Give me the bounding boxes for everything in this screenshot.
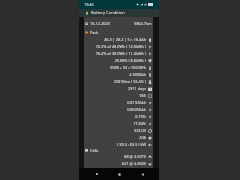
staticText: 0.80350Ah	[127, 107, 146, 112]
button[interactable]: Pack	[85, 29, 152, 36]
button[interactable]: 17.84%	[85, 120, 152, 127]
staticText: Pack	[90, 30, 99, 35]
button[interactable]: #8 @ 4.027V	[85, 153, 152, 160]
button[interactable]: 965	[85, 92, 152, 99]
button[interactable]: 16-12-2023	[85, 20, 152, 27]
staticText: 3588 + 53 = 9332Wh	[110, 65, 146, 70]
staticText: 0.81925Ah	[127, 100, 146, 105]
staticText: Cells	[90, 148, 99, 153]
staticText: 5864.7km	[134, 21, 152, 26]
button[interactable]: 4.9000Ah	[85, 71, 152, 78]
button[interactable]: 323.0V	[85, 127, 152, 134]
button[interactable]: 3588 + 53 = 9332Wh	[85, 64, 152, 71]
button[interactable]: 74.3% of 40.0Wh ( 12.0kWh )	[85, 43, 152, 50]
button[interactable]: 46.3 | 28.2 | 5 = 16.4Ah	[85, 36, 152, 43]
staticText: 78.4% of 38.0Wh ( 11.4kWh )	[95, 51, 146, 56]
staticText: 965	[139, 93, 146, 98]
staticText: 20A	[139, 135, 146, 140]
staticText: 323.0V	[134, 128, 146, 133]
staticText: 19:46	[84, 2, 94, 7]
staticText: 17.84%	[133, 121, 146, 126]
staticText: Battery Condition	[91, 10, 125, 16]
staticText: #21 @ 4.064V	[121, 161, 146, 166]
staticText: 25816km ( 53.4% )	[113, 79, 146, 84]
button[interactable]: Battery	[79, 9, 159, 17]
button[interactable]: ( 30.3 : 83.5 ) kW	[85, 141, 152, 148]
button[interactable]: Back	[137, 169, 147, 179]
staticText: ( 30.3 : 83.5 ) kW	[117, 142, 146, 147]
staticText: 46.3 | 28.2 | 5 = 16.4Ah	[104, 37, 146, 42]
staticText: 8.75%	[135, 114, 146, 119]
button[interactable]: Cells	[85, 148, 152, 153]
staticText: 2911 days	[128, 86, 146, 91]
other: Battery	[85, 11, 89, 15]
button[interactable]: 4.0000V	[85, 167, 152, 174]
button[interactable]: Recents	[92, 169, 102, 179]
button[interactable]: 20A	[85, 134, 152, 141]
staticText: 4.9000Ah	[129, 72, 146, 77]
staticText: 74.3% of 40.0Wh ( 12.0kWh )	[95, 44, 146, 49]
button[interactable]: 78.4% of 38.0Wh ( 11.4kWh )	[85, 50, 152, 57]
staticText: 29.88% ( 8.8kWh )	[114, 58, 146, 63]
button[interactable]: 8.75%	[85, 113, 152, 120]
button[interactable]: #21 @ 4.064V	[85, 160, 152, 167]
staticText: 16-12-2023	[90, 21, 110, 26]
button[interactable]: Home	[114, 169, 124, 179]
button[interactable]: 25816km ( 53.4% )	[85, 78, 152, 85]
button[interactable]: 0.81925Ah	[85, 99, 152, 106]
staticText: #8 @ 4.027V	[124, 154, 146, 159]
button[interactable]: 2911 days	[85, 85, 152, 92]
button[interactable]: 29.88% ( 8.8kWh )	[85, 57, 152, 64]
button[interactable]: 0.80350Ah	[85, 106, 152, 113]
